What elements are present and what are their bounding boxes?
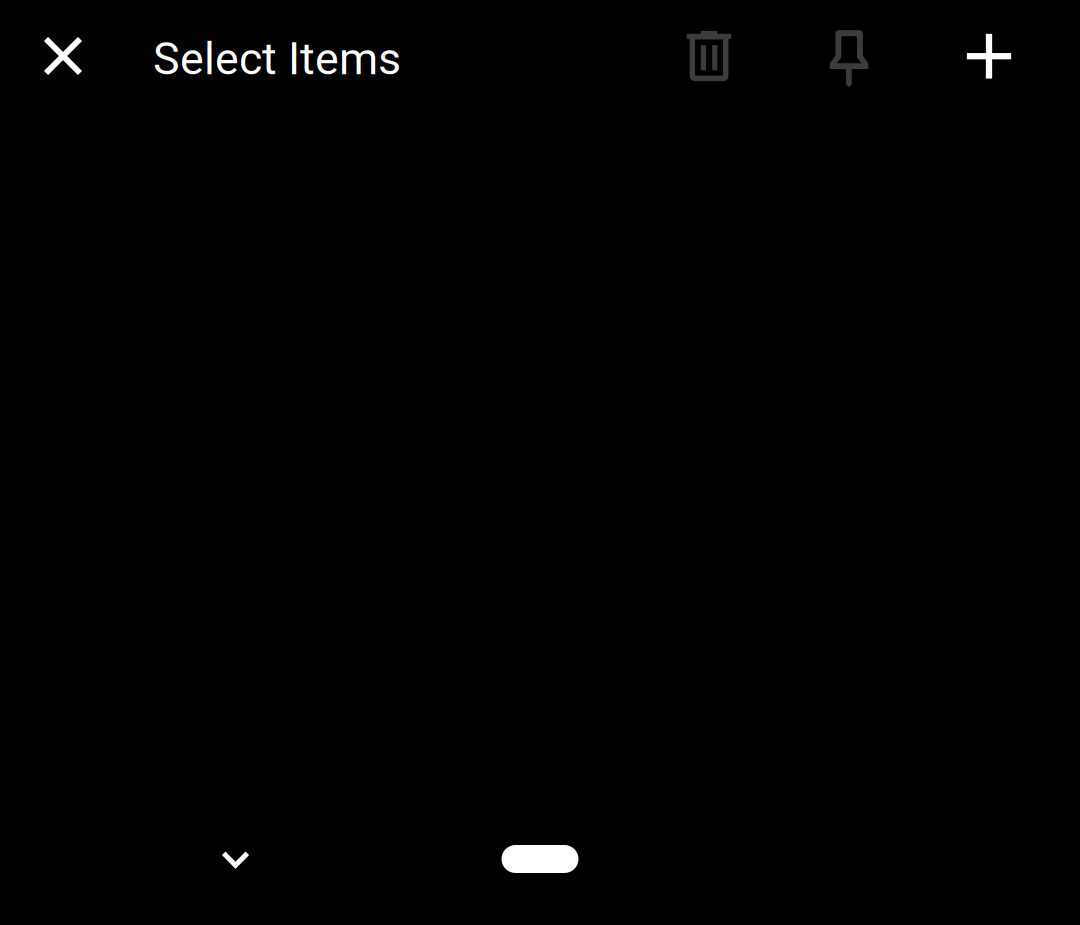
button[interactable]: Delete: [639, 0, 779, 110]
staticText: Select Items: [153, 33, 401, 85]
button[interactable]: Add: [919, 0, 1059, 110]
button[interactable]: Collapse: [187, 811, 283, 907]
button[interactable]: Close: [0, 0, 152, 110]
button[interactable]: Pin: [779, 0, 919, 110]
